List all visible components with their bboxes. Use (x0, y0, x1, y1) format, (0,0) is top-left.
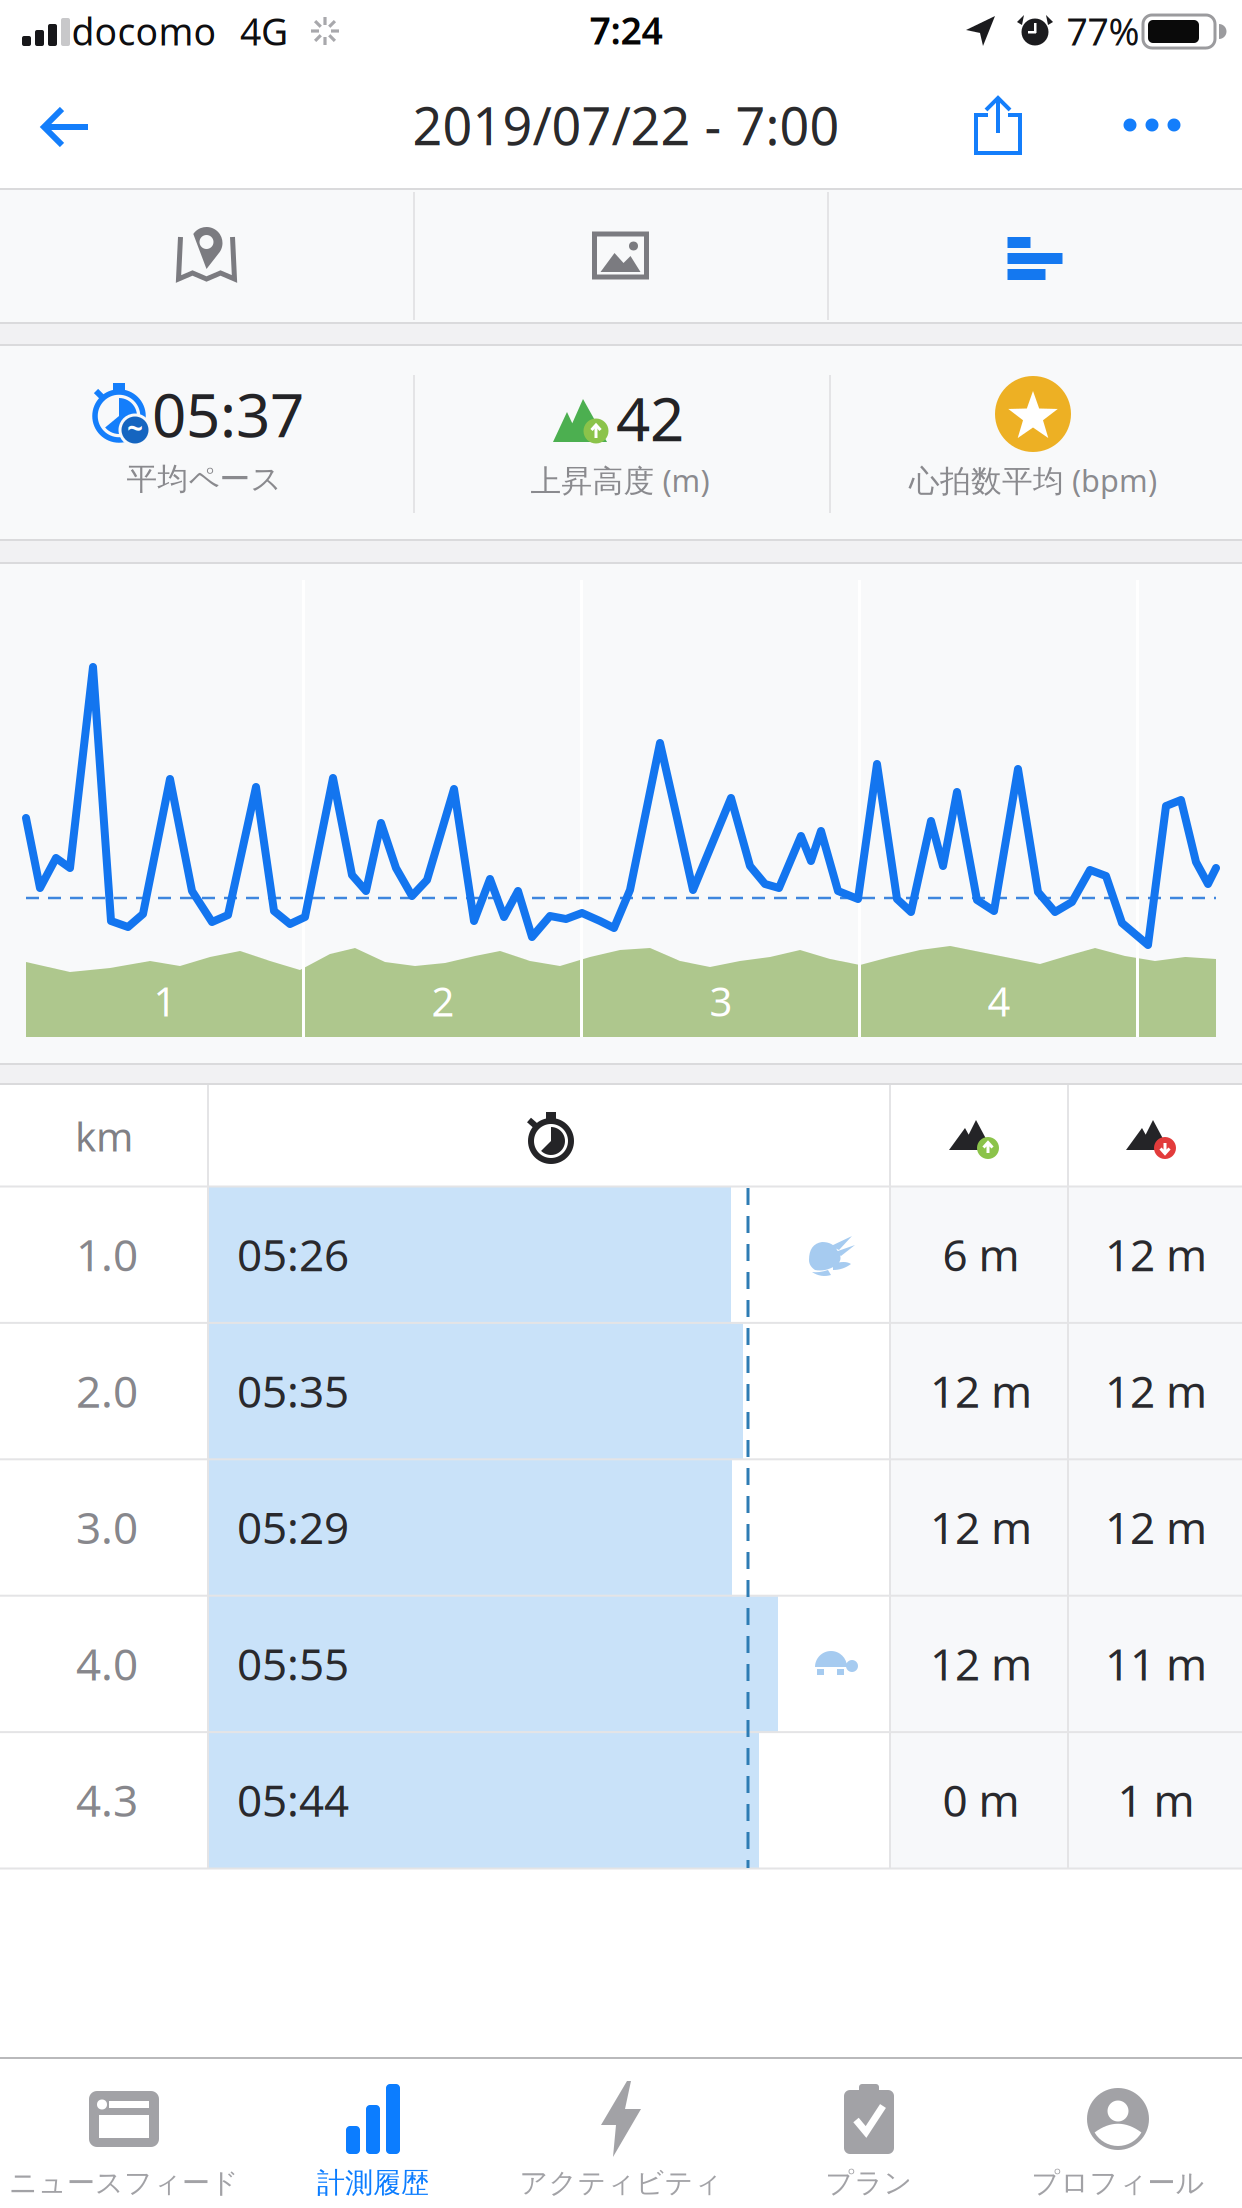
staticText: 11 m (1105, 1634, 1207, 1693)
staticText: 7:24 (589, 5, 662, 55)
staticText: km (75, 1109, 133, 1162)
staticText: アクティビティ (519, 2166, 722, 2200)
staticText: 3.0 (76, 1498, 138, 1556)
staticText: プロフィール (1031, 2166, 1204, 2200)
staticText: 4.0 (76, 1634, 138, 1693)
staticText: 4 (987, 974, 1010, 1027)
staticText: 平均ペース (126, 460, 281, 498)
staticText: 05:55 (237, 1634, 349, 1693)
staticText: 77% (1066, 6, 1139, 56)
staticText: 05:44 (237, 1771, 349, 1829)
staticText: 42 (616, 378, 684, 458)
staticText: 05:29 (237, 1498, 349, 1556)
staticText: 12 m (1105, 1225, 1207, 1283)
staticText: 2.0 (76, 1361, 138, 1420)
staticText: プラン (825, 2166, 912, 2200)
staticText: 12 m (930, 1498, 1032, 1556)
staticText: 12 m (930, 1361, 1032, 1420)
staticText: 1 (153, 974, 176, 1027)
staticText: ~ (127, 409, 143, 447)
staticText: 2 (431, 974, 454, 1027)
button[interactable]: プロフィール (994, 2059, 1242, 2207)
staticText: 4.3 (76, 1771, 138, 1829)
staticText: ニュースフィード (9, 2166, 239, 2200)
staticText: 6 m (942, 1225, 1019, 1283)
button[interactable]: プラン (745, 2059, 993, 2207)
staticText: 12 m (1105, 1498, 1207, 1556)
staticText: 心拍数平均 (bpm) (909, 460, 1157, 500)
staticText: 1 m (1117, 1771, 1194, 1829)
staticText: 05:26 (237, 1225, 349, 1283)
staticText: 4G (240, 6, 288, 56)
button[interactable]: Photos (414, 191, 827, 321)
button[interactable]: Map (0, 191, 413, 321)
staticText: 3 (709, 974, 732, 1027)
button[interactable]: Share (974, 95, 1022, 157)
button[interactable]: 計測履歴 (249, 2059, 497, 2207)
button[interactable]: Statistics (828, 191, 1241, 321)
button[interactable]: ニュースフィード (0, 2059, 248, 2207)
staticText: 1.0 (76, 1225, 138, 1283)
button[interactable]: Back (38, 97, 94, 157)
staticText: 2019/07/22 - 7:00 (412, 90, 839, 160)
staticText: 12 m (930, 1634, 1032, 1693)
staticText: 05:35 (237, 1361, 349, 1420)
button[interactable]: アクティビティ (497, 2059, 745, 2207)
staticText: 05:37 (152, 374, 304, 454)
button[interactable]: More (1122, 117, 1182, 133)
staticText: 上昇高度 (m) (530, 460, 709, 500)
staticText: docomo (71, 6, 216, 56)
staticText: 12 m (1105, 1361, 1207, 1420)
staticText: 0 m (942, 1771, 1019, 1829)
staticText: 計測履歴 (317, 2166, 429, 2200)
